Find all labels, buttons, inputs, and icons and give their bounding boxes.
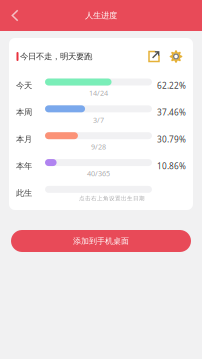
staticText: 今天 xyxy=(16,80,32,91)
staticText: 本月 xyxy=(16,134,32,144)
staticText: 14/24 xyxy=(89,88,108,98)
button[interactable]: Share xyxy=(143,46,165,66)
staticText: 10.86% xyxy=(157,160,186,172)
staticText: 37.46% xyxy=(157,107,186,118)
staticText: 今日不走，明天要跑 xyxy=(20,51,92,62)
staticText: 本年 xyxy=(16,161,32,171)
button[interactable]: 添加到手机桌面 xyxy=(11,230,191,252)
button[interactable]: Back xyxy=(0,0,30,31)
staticText: 9/28 xyxy=(91,142,106,152)
staticText: 此生 xyxy=(16,188,32,198)
staticText: 添加到手机桌面 xyxy=(73,236,129,246)
staticText: 人生进度 xyxy=(85,10,117,21)
button[interactable]: Settings xyxy=(165,46,187,66)
staticText: 30.79% xyxy=(157,134,186,145)
staticText: 62.22% xyxy=(157,80,186,91)
staticText: 点击右上角设置出生日期 xyxy=(79,195,145,202)
staticText: 3/7 xyxy=(93,115,104,125)
staticText: 本周 xyxy=(16,107,32,117)
staticText: 40/365 xyxy=(87,169,110,178)
